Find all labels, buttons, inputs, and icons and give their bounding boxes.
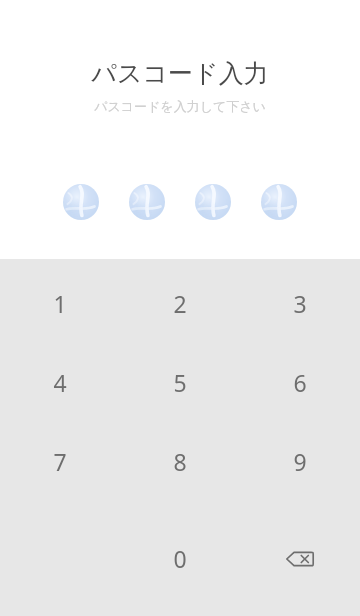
staticText: 1 [53,288,67,319]
staticText: 6 [293,367,307,398]
button[interactable]: 2 [120,264,240,343]
staticText: 9 [293,446,307,477]
staticText: 0 [173,543,187,574]
staticText: 2 [173,288,187,319]
button[interactable]: 1 [0,264,120,343]
button[interactable]: 3 [240,264,360,343]
button[interactable]: Backspace [240,501,360,616]
staticText: 3 [293,288,307,319]
staticText: パスコードを入力して下さい [94,98,266,114]
button[interactable]: 5 [120,343,240,422]
staticText: パスコード入力 [91,58,269,89]
button[interactable]: 4 [0,343,120,422]
staticText: 8 [173,446,187,477]
staticText: 4 [53,367,67,398]
button[interactable]: 9 [240,422,360,501]
button[interactable]: 0 [120,501,240,616]
button[interactable]: 6 [240,343,360,422]
button[interactable]: 8 [120,422,240,501]
button[interactable]: 7 [0,422,120,501]
staticText: 5 [173,367,187,398]
staticText: 7 [53,446,67,477]
